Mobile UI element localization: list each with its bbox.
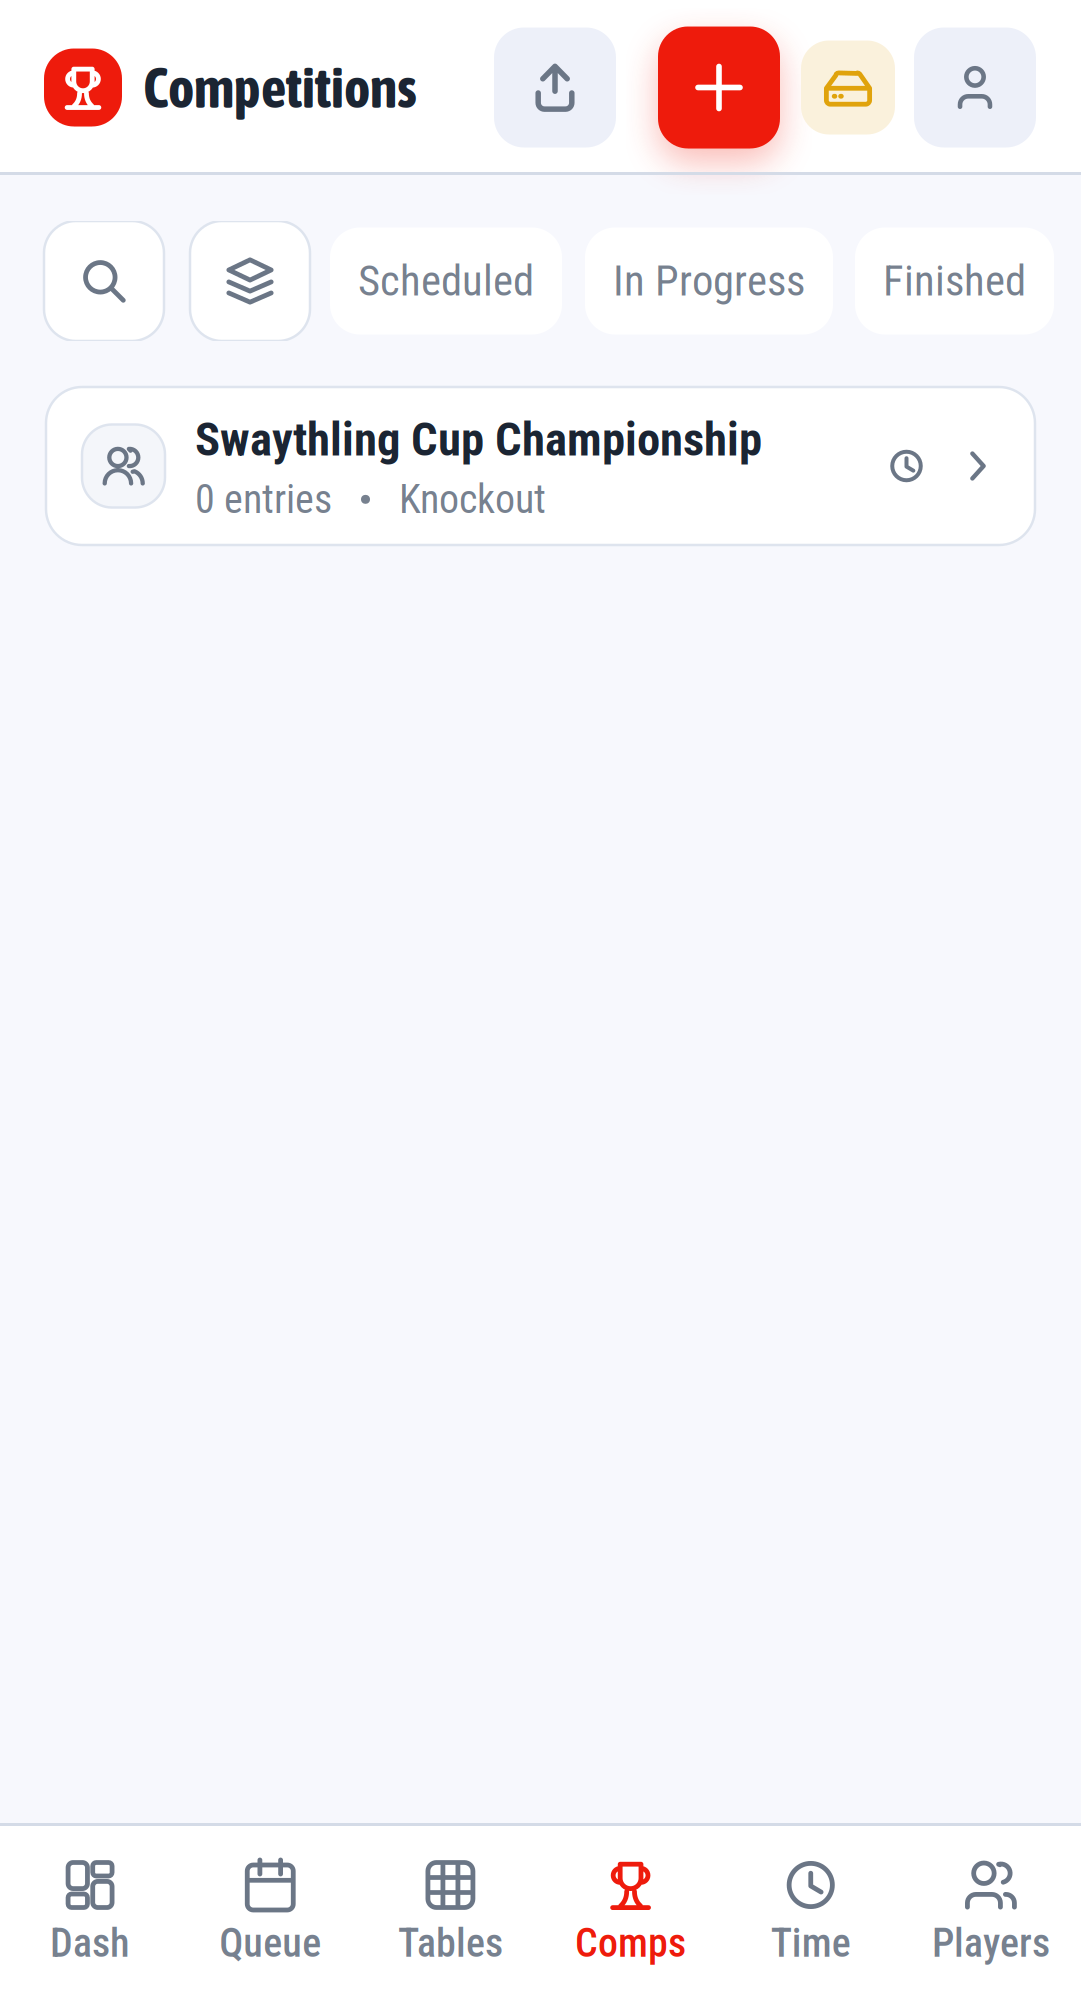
button[interactable]: Time xyxy=(721,1861,901,1959)
staticText: In Progress xyxy=(613,256,805,306)
button[interactable]: Archive xyxy=(801,40,895,134)
button[interactable]: Search xyxy=(44,221,164,341)
button[interactable]: Filter xyxy=(190,221,310,341)
staticText: Players xyxy=(932,1920,1050,1966)
button[interactable]: Finished xyxy=(855,227,1054,334)
button[interactable]: Scheduled xyxy=(330,227,562,334)
staticText: Swaythling Cup Championship xyxy=(195,412,762,467)
button[interactable]: Share xyxy=(494,27,616,147)
button[interactable]: New competition xyxy=(658,26,780,148)
staticText: Knockout xyxy=(399,476,546,523)
button[interactable]: In Progress xyxy=(585,227,833,334)
button[interactable]: Swaythling Cup Championship xyxy=(46,387,1035,545)
button[interactable]: Players xyxy=(901,1861,1081,1959)
staticText: Time xyxy=(771,1920,851,1966)
staticText: Dash xyxy=(50,1920,130,1966)
staticText: Competitions xyxy=(143,55,417,120)
staticText: Finished xyxy=(883,256,1026,306)
staticText: Scheduled xyxy=(358,256,534,306)
staticText: Comps xyxy=(575,1920,686,1966)
staticText: 0 entries xyxy=(195,476,332,523)
button[interactable]: Queue xyxy=(180,1861,360,1959)
button[interactable]: Comps xyxy=(540,1861,721,1959)
button[interactable]: Tables xyxy=(360,1861,540,1959)
button[interactable]: Competitions xyxy=(44,48,417,126)
button[interactable]: Dash xyxy=(0,1861,180,1959)
button[interactable]: Profile xyxy=(914,27,1036,147)
staticText: Tables xyxy=(398,1920,503,1966)
staticText: Queue xyxy=(219,1920,321,1966)
